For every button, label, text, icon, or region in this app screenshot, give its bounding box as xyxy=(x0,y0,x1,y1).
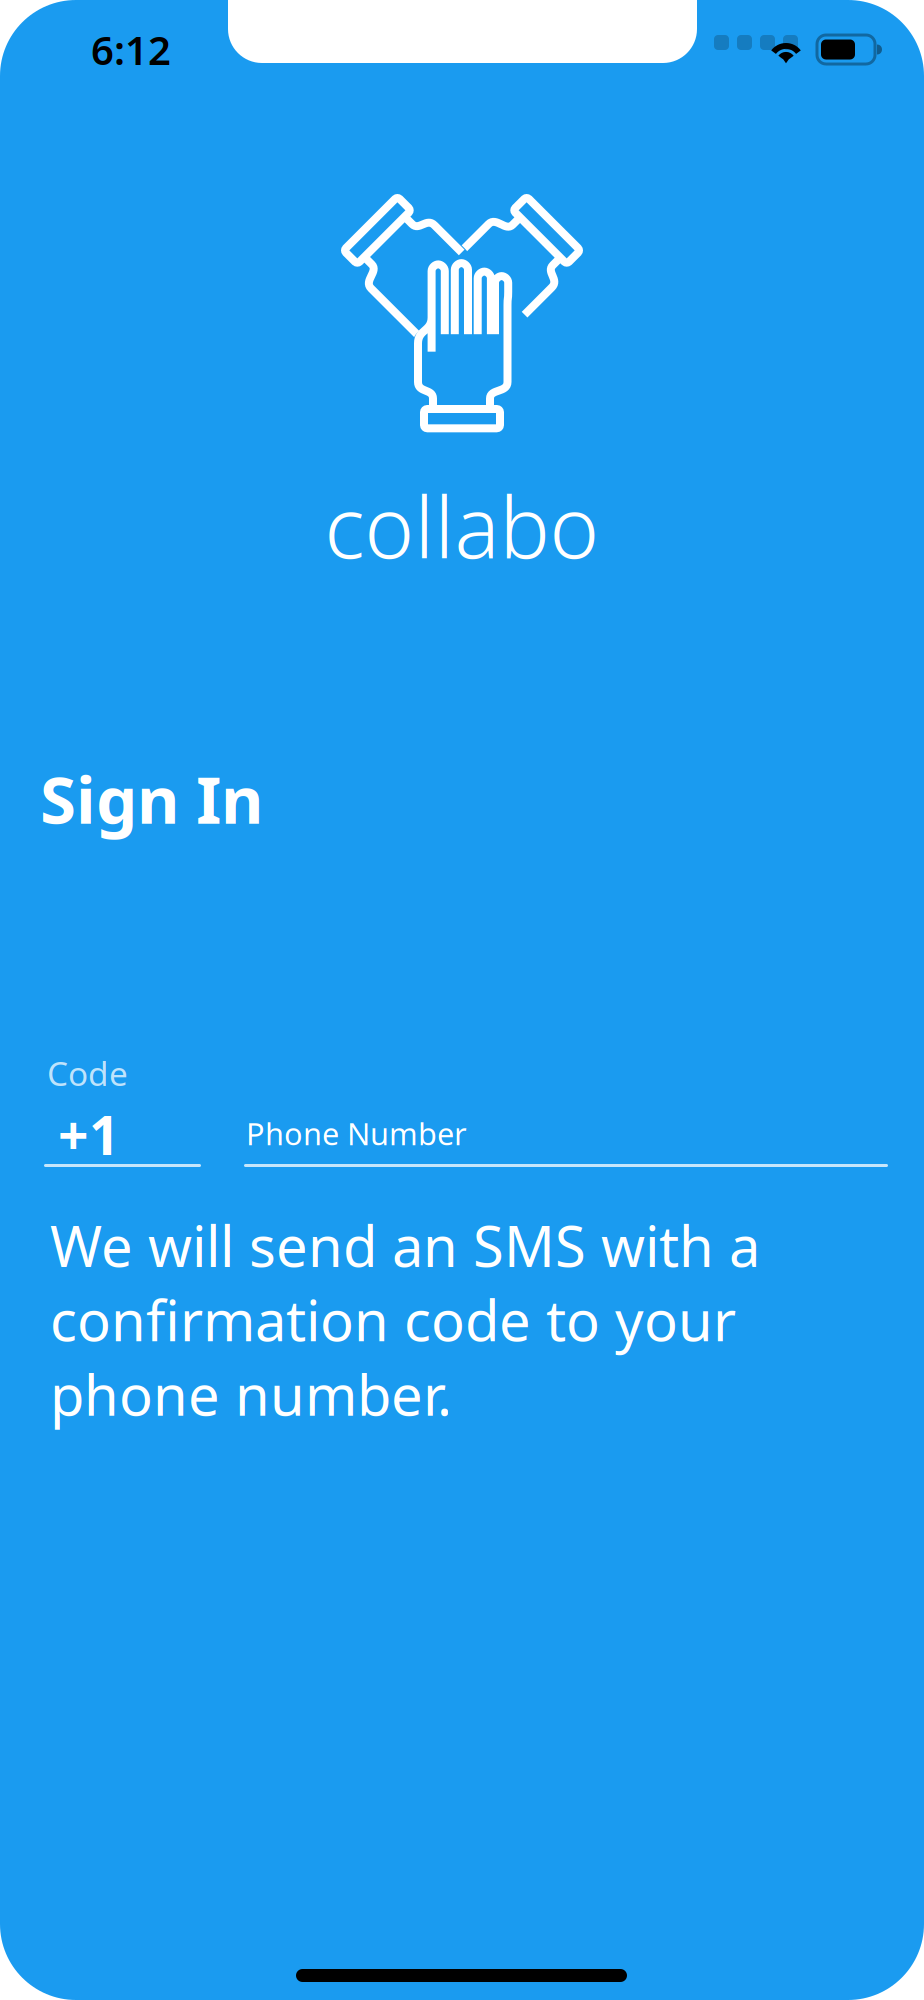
staticText: collabo xyxy=(324,470,599,581)
staticText: Phone Number xyxy=(246,1113,467,1154)
staticText: 6:12 xyxy=(91,23,171,76)
staticText: +1 xyxy=(58,1099,120,1170)
staticText: Sign In xyxy=(40,755,263,842)
staticText: Code xyxy=(47,1051,128,1095)
staticText: We will send an SMS with a confirmation … xyxy=(50,1208,760,1431)
